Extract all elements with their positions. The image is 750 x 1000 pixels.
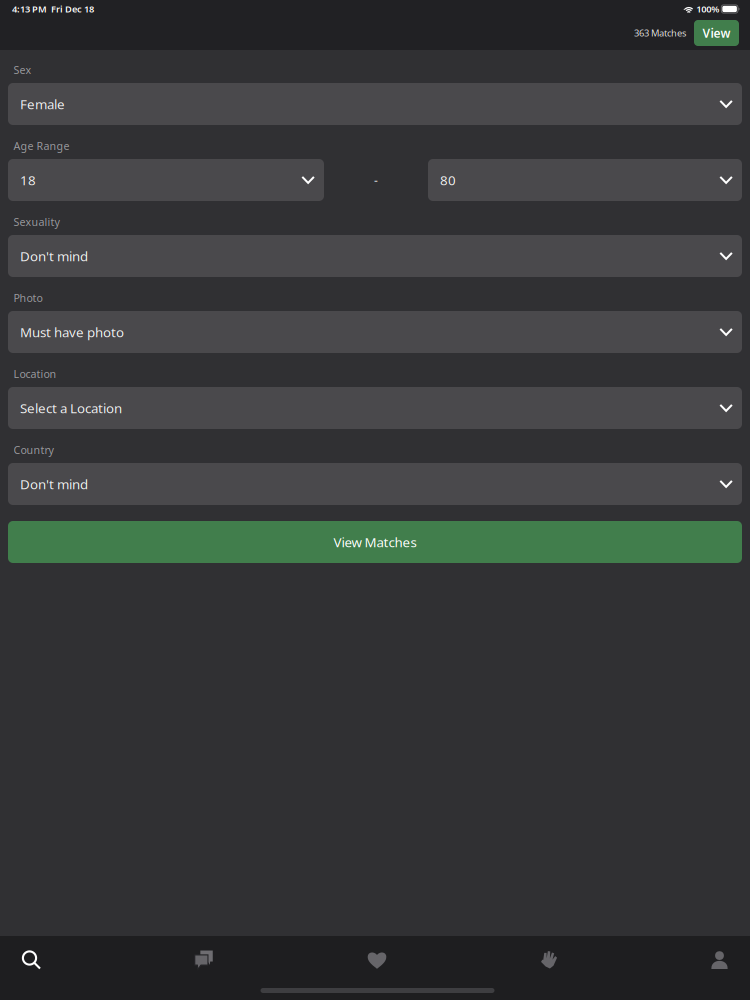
staticText: 363 Matches xyxy=(634,27,686,39)
staticText: Location xyxy=(13,367,56,381)
button[interactable]: 18 xyxy=(8,159,324,201)
button[interactable]: Select a Location xyxy=(8,387,742,429)
staticText: 80 xyxy=(440,171,456,189)
button[interactable]: Must have photo xyxy=(8,311,742,353)
button[interactable]: View Matches xyxy=(8,521,742,563)
staticText: Don't mind xyxy=(20,475,88,493)
staticText: Must have photo xyxy=(20,323,124,341)
staticText: Don't mind xyxy=(20,247,88,265)
staticText: 4:13 PM xyxy=(12,3,47,15)
staticText: Sex xyxy=(13,63,31,77)
staticText: 18 xyxy=(20,171,36,189)
button[interactable]: Messages xyxy=(195,950,214,969)
button[interactable]: Waves xyxy=(540,950,557,969)
staticText: View Matches xyxy=(333,533,416,551)
button[interactable]: Likes xyxy=(367,951,386,969)
staticText: Sexuality xyxy=(13,215,59,229)
button[interactable]: Don't mind xyxy=(8,235,742,277)
staticText: Age Range xyxy=(13,139,69,153)
button[interactable]: Search xyxy=(21,949,41,970)
button[interactable]: Don't mind xyxy=(8,463,742,505)
staticText: Select a Location xyxy=(20,399,122,417)
staticText: Fri Dec 18 xyxy=(47,3,94,15)
button[interactable]: Profile xyxy=(711,951,728,969)
staticText: Country xyxy=(13,443,53,457)
staticText: 100% xyxy=(694,3,721,15)
staticText: View xyxy=(702,25,730,41)
button[interactable]: 80 xyxy=(428,159,742,201)
button[interactable]: Female xyxy=(8,83,742,125)
button[interactable]: View xyxy=(694,20,739,46)
staticText: Female xyxy=(20,95,65,113)
staticText: - xyxy=(374,172,378,188)
staticText: Photo xyxy=(13,291,42,305)
